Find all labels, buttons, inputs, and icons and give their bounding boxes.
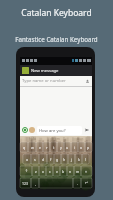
staticText: h xyxy=(63,157,66,162)
staticText: b xyxy=(62,169,65,174)
staticText: Fantastice Catalan Keyboard xyxy=(15,35,98,43)
button[interactable]: Add attachment xyxy=(22,127,28,133)
button[interactable]: f xyxy=(47,154,54,164)
button[interactable]: a xyxy=(23,154,31,164)
staticText: z xyxy=(35,169,37,174)
staticText: , xyxy=(35,181,36,186)
staticText: v xyxy=(56,169,58,174)
button[interactable]: ↵ xyxy=(81,178,92,188)
staticText: x xyxy=(42,169,44,174)
button[interactable]: i xyxy=(71,142,78,152)
button[interactable]: u xyxy=(64,142,71,152)
button[interactable]: com xyxy=(44,136,68,141)
button[interactable]: p xyxy=(85,142,92,152)
button[interactable] xyxy=(39,178,73,188)
staticText: n xyxy=(69,169,72,174)
button[interactable]: b xyxy=(60,166,67,176)
button[interactable]: y xyxy=(57,142,64,152)
button[interactable]: h xyxy=(61,154,68,164)
staticText: m xyxy=(76,169,80,174)
staticText: t xyxy=(53,145,55,150)
staticText: e xyxy=(39,145,41,150)
staticText: d xyxy=(42,157,45,162)
button[interactable]: × xyxy=(81,166,92,176)
staticText: New message xyxy=(31,68,59,74)
button[interactable]: w xyxy=(28,142,36,152)
staticText: l xyxy=(85,157,86,162)
staticText: How are you? xyxy=(39,128,66,134)
button[interactable]: g xyxy=(54,154,61,164)
button[interactable]: j xyxy=(68,154,75,164)
button[interactable]: , xyxy=(31,178,39,188)
button[interactable]: s xyxy=(31,154,39,164)
button[interactable]: 123 xyxy=(20,178,31,188)
staticText: hola xyxy=(29,136,36,141)
staticText: o xyxy=(80,145,83,150)
staticText: f xyxy=(50,157,52,162)
button[interactable]: How are you? xyxy=(37,126,82,135)
button[interactable]: r xyxy=(43,142,50,152)
staticText: bon xyxy=(77,136,84,141)
button[interactable]: x xyxy=(39,166,46,176)
staticText: com xyxy=(53,136,60,141)
staticText: y xyxy=(60,145,62,150)
button[interactable]: d xyxy=(39,154,47,164)
button[interactable]: . xyxy=(73,178,81,188)
staticText: i xyxy=(74,145,75,150)
staticText: g xyxy=(56,157,59,162)
staticText: 123 xyxy=(22,181,29,186)
staticText: j xyxy=(71,157,72,162)
button[interactable]: n xyxy=(67,166,74,176)
button[interactable]: t xyxy=(50,142,57,152)
staticText: ↵ xyxy=(85,181,88,185)
button[interactable]: New message xyxy=(20,65,92,76)
button[interactable]: hola xyxy=(20,136,44,141)
staticText: Catalan Keyboard xyxy=(21,7,92,19)
button[interactable]: m xyxy=(74,166,81,176)
staticText: ↑ xyxy=(25,169,28,173)
staticText: Type name or number xyxy=(22,78,66,84)
staticText: k xyxy=(78,157,80,162)
button[interactable]: bon xyxy=(68,136,92,141)
staticText: . xyxy=(77,181,78,186)
staticText: r xyxy=(46,145,48,150)
staticText: q xyxy=(23,145,26,150)
button[interactable]: z xyxy=(32,166,39,176)
staticText: p xyxy=(87,145,90,150)
button[interactable]: ↑ xyxy=(20,166,32,176)
button[interactable]: c xyxy=(46,166,53,176)
staticText: w xyxy=(31,145,34,150)
staticText: u xyxy=(66,145,69,150)
button[interactable]: k xyxy=(75,154,82,164)
button[interactable]: Contacts xyxy=(85,79,90,84)
staticText: s xyxy=(34,157,36,162)
button[interactable]: v xyxy=(53,166,60,176)
button[interactable]: o xyxy=(78,142,85,152)
staticText: × xyxy=(85,169,88,174)
button[interactable]: e xyxy=(36,142,43,152)
button[interactable]: l xyxy=(82,154,89,164)
button[interactable]: Send xyxy=(84,127,90,133)
staticText: a xyxy=(26,157,28,162)
staticText: c xyxy=(49,169,51,174)
button[interactable]: q xyxy=(20,142,28,152)
